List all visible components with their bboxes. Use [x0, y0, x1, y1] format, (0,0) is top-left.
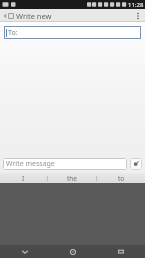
button[interactable]: Back — [0, 245, 49, 258]
button[interactable]: Attach — [130, 158, 142, 170]
button[interactable]: Home — [49, 245, 97, 258]
button[interactable]: I — [0, 173, 47, 183]
button[interactable]: to — [97, 173, 145, 183]
button[interactable]: Recent apps — [97, 245, 145, 258]
button[interactable]: the — [48, 173, 96, 183]
staticText: 11:28 — [128, 1, 144, 9]
staticText: To: — [8, 28, 18, 38]
staticText: the — [67, 174, 78, 183]
staticText: Write new — [16, 11, 52, 21]
button[interactable]: More options — [131, 9, 145, 22]
staticText: to — [118, 174, 125, 183]
button[interactable]: Write message — [3, 158, 127, 170]
staticText: Write message — [6, 159, 55, 169]
button[interactable]: Back — [0, 9, 16, 22]
button[interactable]: To: — [4, 26, 141, 39]
staticText: I — [22, 174, 25, 183]
